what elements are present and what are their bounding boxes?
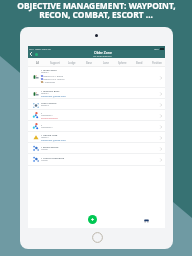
staticText: Action xyxy=(41,148,48,151)
button[interactable]: Lodge xyxy=(63,58,80,67)
button[interactable]: All xyxy=(28,58,46,67)
staticText: Placemark @node.road xyxy=(41,95,66,98)
staticText: 9:41 Team Zone FR xyxy=(29,47,51,50)
staticText: 1 xyxy=(41,123,43,126)
button[interactable]: 1 xyxy=(28,121,165,132)
staticText: Reconnaissance xyxy=(41,117,58,120)
button[interactable]: Bond xyxy=(131,58,148,67)
staticText: Action xyxy=(41,159,48,162)
button[interactable]: Support xyxy=(46,58,63,67)
button[interactable]: Vehicle xyxy=(143,217,150,224)
staticText: 1 Bomb defuse xyxy=(41,145,59,148)
button[interactable]: 1 Bomb defuse xyxy=(28,143,165,154)
staticText: OBJECTIVE MANAGEMENT: WAYPOINT, xyxy=(17,0,176,11)
staticText: Recon ? xyxy=(41,104,50,107)
button[interactable]: Lone Camera xyxy=(28,99,165,110)
staticText: Base xyxy=(86,61,92,65)
staticText: 1 Missions Brief xyxy=(41,89,60,92)
staticText: RECON, COMBAT, ESCORT ... xyxy=(39,9,153,20)
button[interactable]: Back xyxy=(28,51,34,57)
staticText: Approx No 2 Launch xyxy=(43,78,65,81)
button[interactable]: Add waypoint xyxy=(88,215,97,224)
staticText: Approx No 1 Bomb xyxy=(43,75,64,78)
button[interactable]: Position xyxy=(148,58,165,67)
button[interactable]: 1 Hazard road xyxy=(28,132,165,143)
button[interactable]: Lane xyxy=(97,58,114,67)
staticText: Waypoint ? xyxy=(41,126,53,129)
button[interactable]: Sphere xyxy=(114,58,131,67)
button[interactable]: 1 Model work xyxy=(28,67,165,88)
staticText: 1 Launch procedure xyxy=(41,156,65,159)
staticText: Position xyxy=(152,61,162,65)
staticText: Lodge xyxy=(68,61,76,65)
staticText: Lone Camera xyxy=(41,101,57,104)
staticText: Lane xyxy=(103,61,109,65)
button[interactable]: Base xyxy=(80,58,97,67)
staticText: No zone selected xyxy=(93,55,112,58)
button[interactable]: 1 Missions Brief xyxy=(28,88,165,99)
button[interactable]: Status xyxy=(35,53,38,56)
staticText: Placemark @node.road xyxy=(41,139,66,142)
staticText: Older Zone xyxy=(94,50,112,55)
staticText: utility ? xyxy=(41,136,49,139)
staticText: 1 Hazard road xyxy=(41,133,58,136)
staticText: Waypoint ? xyxy=(41,114,53,117)
staticText: 1 xyxy=(41,111,43,114)
staticText: Initial ? xyxy=(41,92,49,95)
staticText: Support xyxy=(50,61,60,65)
button[interactable]: 1 xyxy=(28,110,165,121)
staticText: 1 Model work xyxy=(41,68,57,71)
staticText: Sphere xyxy=(118,61,127,65)
staticText: 1 Obstacles xyxy=(43,81,56,84)
staticText: 38% xyxy=(154,47,159,50)
staticText: All xyxy=(36,61,39,65)
staticText: Bond xyxy=(136,61,143,65)
button[interactable]: 1 Launch procedure xyxy=(28,154,165,166)
staticText: Initial ? xyxy=(41,71,49,74)
